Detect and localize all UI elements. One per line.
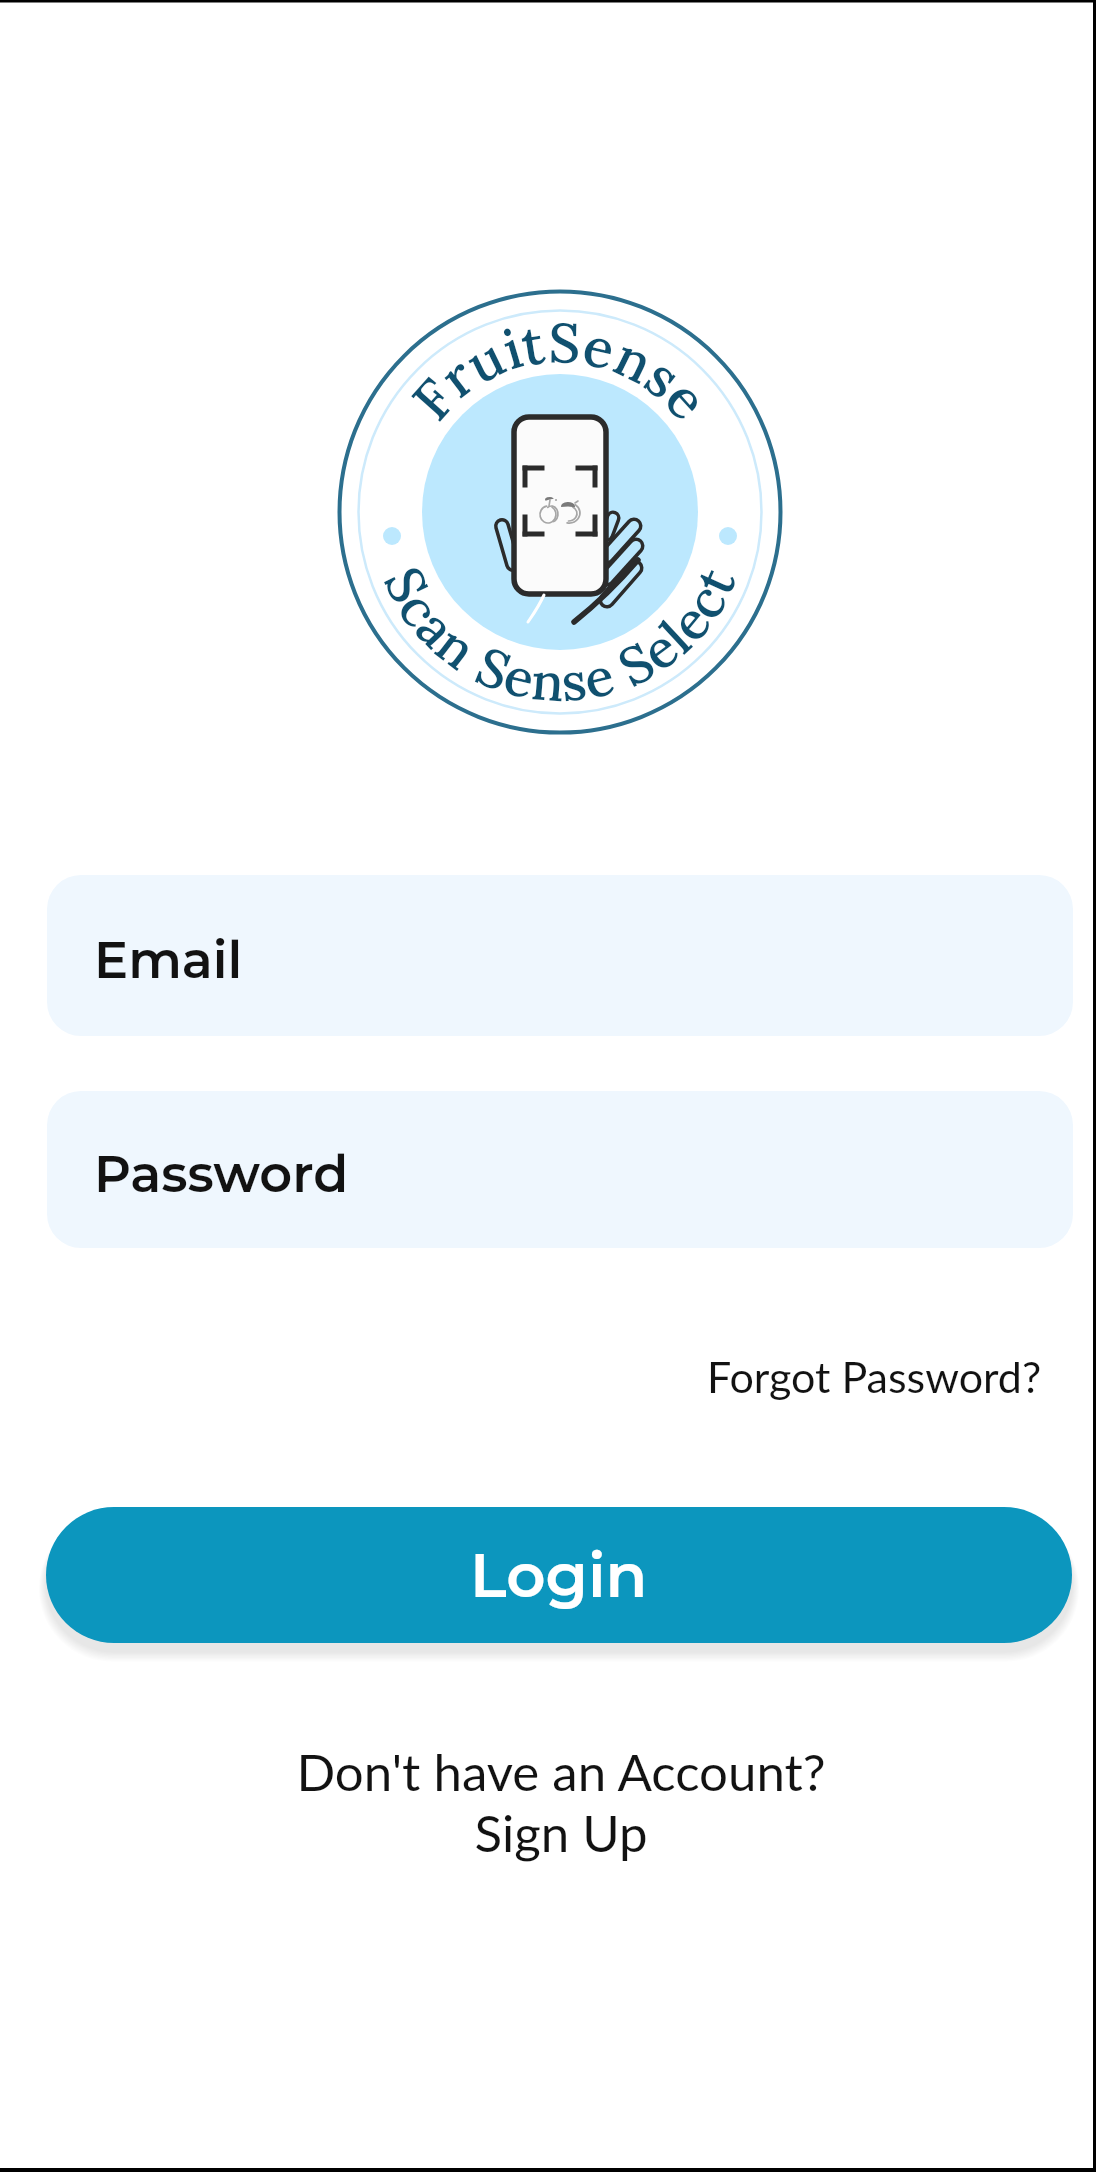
button[interactable]: Login xyxy=(46,1507,1072,1643)
staticText: Forgot Password? xyxy=(707,1351,1042,1403)
staticText: Email xyxy=(94,929,243,991)
button[interactable]: Password xyxy=(47,1091,1073,1248)
staticText: Don't have an Account? Sign Up xyxy=(296,1741,826,1863)
staticText: Login xyxy=(470,1538,648,1612)
button[interactable]: Forgot Password? xyxy=(695,1341,1054,1413)
button[interactable]: Email xyxy=(47,875,1073,1036)
other: FruitSense - Scan Sense Select xyxy=(337,289,783,735)
staticText: Password xyxy=(94,1143,349,1205)
button[interactable]: Don't have an Account? Sign Up xyxy=(13,1741,1096,1863)
